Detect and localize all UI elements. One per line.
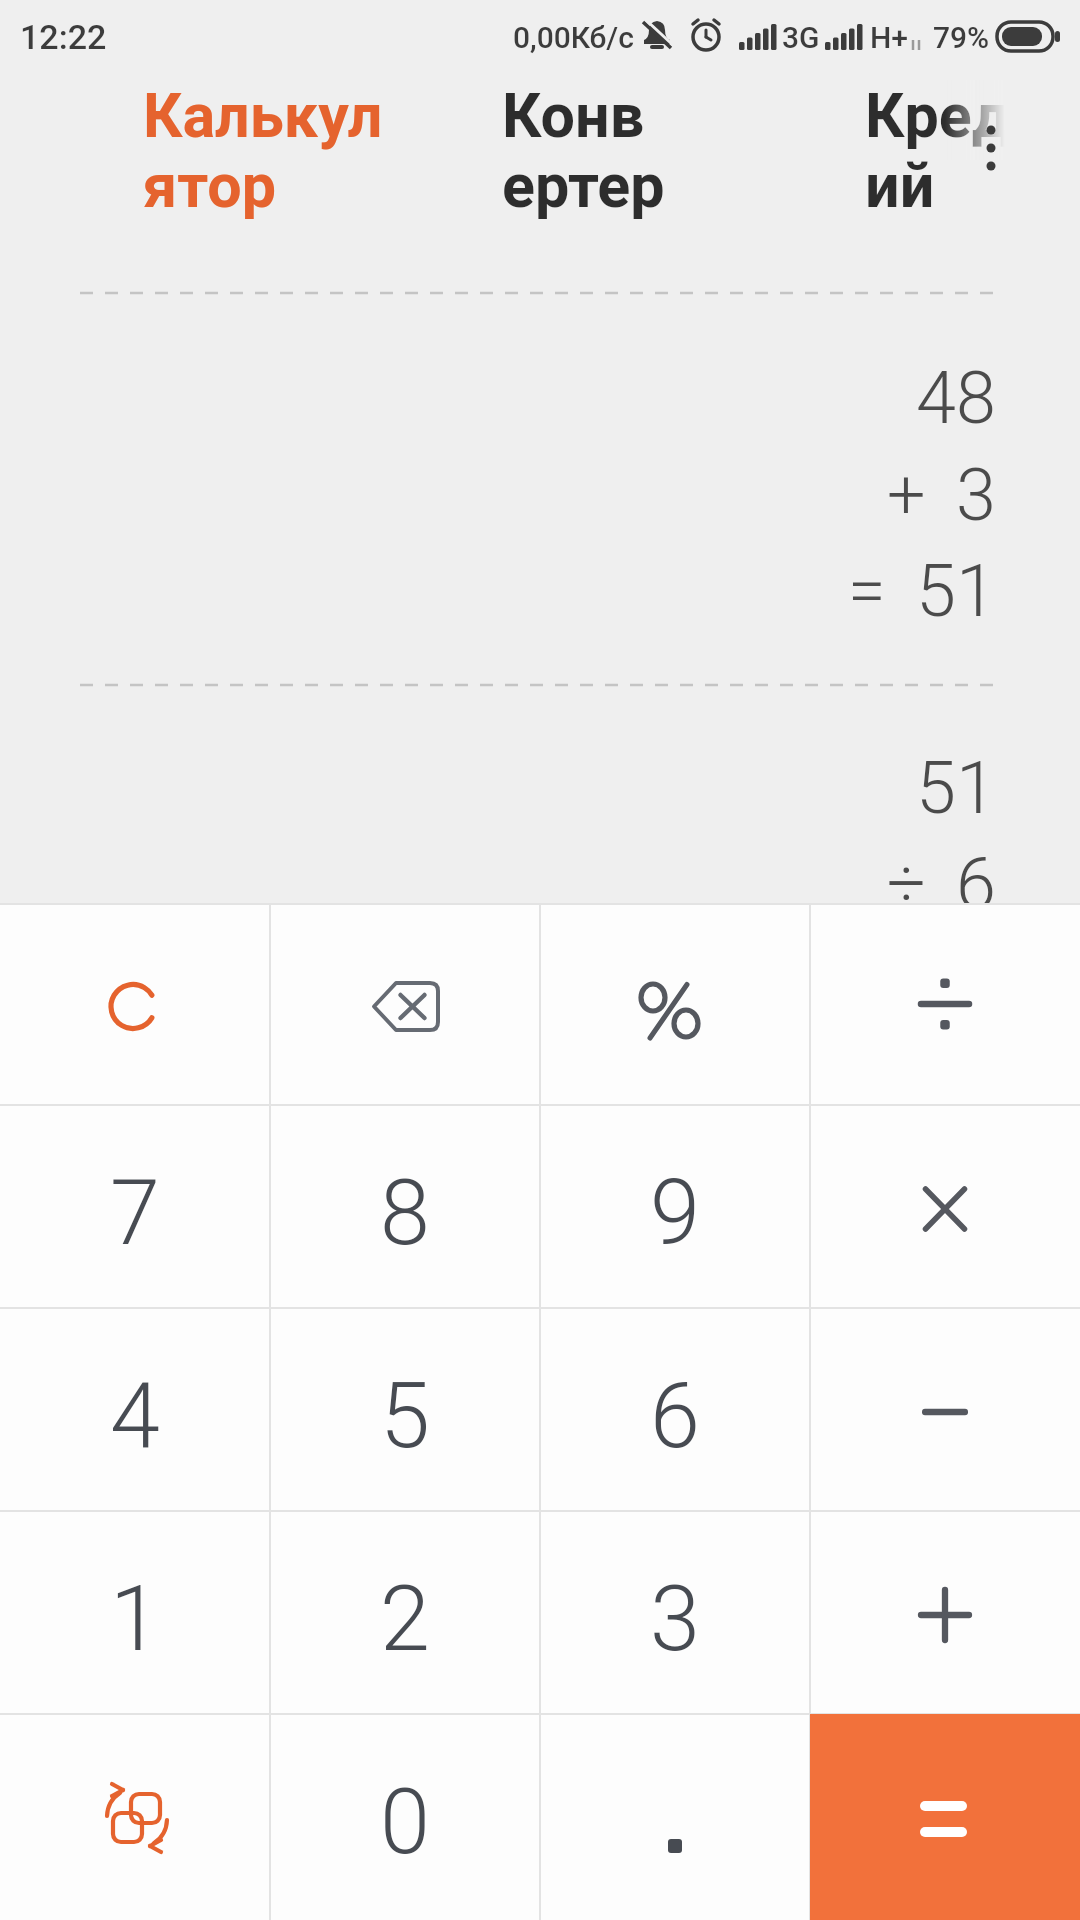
staticText: 6 [956,842,996,926]
staticText: 0 [380,1770,430,1875]
button[interactable] [810,903,1080,1106]
button[interactable] [0,903,270,1106]
button[interactable] [810,1106,1080,1309]
staticText: 51 [916,549,996,633]
button[interactable]: 5 [270,1309,540,1512]
staticText: 51 [916,746,996,830]
staticText: H+ [870,20,909,55]
staticText: Кред ий [865,80,1011,222]
staticText: 79% [933,20,990,55]
staticText: 8 [380,1161,430,1266]
button[interactable]: 4 [0,1309,270,1512]
button[interactable] [0,1715,270,1918]
button[interactable] [270,903,540,1106]
staticText: 6 [650,1364,700,1469]
button[interactable]: 8 [270,1106,540,1309]
button[interactable] [810,1309,1080,1512]
staticText: 0,00Кб/с [513,20,634,55]
staticText: = [848,551,886,631]
button[interactable] [810,1512,1080,1715]
staticText: 7 [110,1161,160,1266]
staticText: Конв ертер [502,80,665,222]
staticText: + [887,455,926,535]
staticText: ÷ [887,844,926,924]
button[interactable]: 3 [540,1512,810,1715]
button[interactable]: 6 [540,1309,810,1512]
staticText: 48 [916,356,996,440]
button[interactable]: Конв ертер [502,80,665,222]
staticText: 1 [110,1567,160,1672]
button[interactable] [540,1715,810,1918]
staticText: Калькул ятор [143,80,383,222]
staticText: 4 [110,1364,160,1469]
staticText: 12:22 [20,17,107,57]
button[interactable]: Калькул ятор [143,80,383,222]
staticText: 3G [782,20,820,55]
button[interactable]: 2 [270,1512,540,1715]
button[interactable] [971,110,1011,190]
button[interactable] [810,1714,1080,1920]
staticText: 3 [956,453,996,537]
button[interactable] [540,903,810,1106]
staticText: 5 [380,1364,430,1469]
button[interactable]: 9 [540,1106,810,1309]
button[interactable]: 1 [0,1512,270,1715]
staticText: 3 [650,1567,700,1672]
button[interactable]: 0 [270,1715,540,1918]
button[interactable]: 7 [0,1106,270,1309]
staticText: 2 [380,1567,430,1672]
button[interactable]: Кред ий [865,80,1011,222]
staticText: 9 [650,1161,700,1266]
